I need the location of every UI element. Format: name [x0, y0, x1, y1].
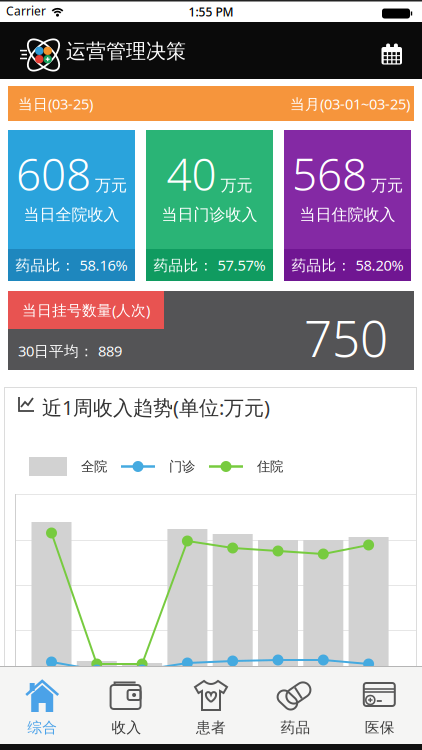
staticText: Carrier: [6, 3, 46, 19]
staticText: 医保: [365, 718, 395, 736]
button[interactable]: 608: [8, 130, 135, 281]
staticText: 当日(03-25): [18, 94, 93, 113]
button[interactable]: 40: [146, 130, 273, 281]
staticText: 近1周收入趋势(单位:万元): [42, 394, 270, 421]
button[interactable]: 568: [284, 130, 411, 281]
button[interactable]: 当日挂号数量(人次): [8, 291, 414, 370]
button[interactable]: 综合: [0, 667, 84, 743]
staticText: 30日平均： 889: [18, 341, 122, 360]
staticText: 运营管理决策: [66, 39, 186, 64]
staticText: 药品比： 58.16%: [15, 255, 127, 275]
staticText: 当日全院收入: [23, 205, 119, 225]
button[interactable]: 收入: [84, 667, 169, 743]
staticText: 万元: [371, 176, 403, 195]
staticText: 当日门诊收入: [161, 205, 257, 225]
staticText: 门诊: [169, 458, 195, 475]
staticText: 患者: [196, 718, 226, 736]
staticText: 收入: [112, 718, 142, 736]
staticText: 万元: [95, 176, 127, 195]
button[interactable]: 患者: [169, 667, 253, 743]
staticText: 住院: [257, 458, 283, 475]
staticText: 当月(03-01~03-25): [290, 94, 410, 113]
staticText: 万元: [220, 176, 252, 195]
staticText: 40: [166, 144, 216, 203]
staticText: 608: [16, 144, 91, 203]
staticText: 568: [292, 144, 367, 203]
staticText: 药品: [280, 718, 310, 736]
staticText: 综合: [27, 718, 57, 736]
staticText: 全院: [81, 458, 107, 475]
staticText: 药品比： 58.20%: [291, 255, 403, 275]
staticText: 药品比： 57.57%: [153, 255, 265, 275]
button[interactable]: 药品: [253, 667, 338, 743]
staticText: 当日住院收入: [299, 205, 395, 225]
staticText: 750: [304, 305, 388, 370]
button[interactable]: 医保: [338, 667, 422, 743]
staticText: 1:55 PM: [188, 4, 233, 20]
button[interactable]: [370, 32, 414, 76]
staticText: 当日挂号数量(人次): [22, 300, 150, 320]
